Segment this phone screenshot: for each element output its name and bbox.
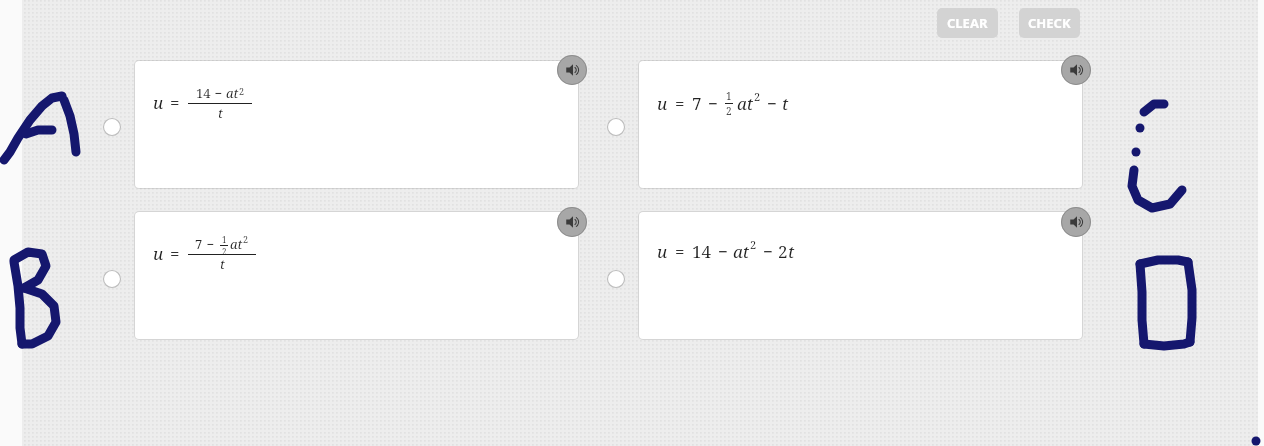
staticText: = xyxy=(170,242,180,265)
button[interactable]: CLEAR xyxy=(937,8,998,38)
staticText: 1 xyxy=(726,89,732,103)
staticText: − xyxy=(767,92,777,115)
button[interactable]: u xyxy=(135,212,578,339)
staticText: CLEAR xyxy=(947,14,988,32)
staticText: − xyxy=(211,84,226,102)
staticText: u xyxy=(153,91,164,114)
button[interactable]: Play audio A xyxy=(557,55,587,85)
staticText: 2 xyxy=(750,237,757,252)
button[interactable]: u xyxy=(639,212,1082,339)
staticText: 14 xyxy=(196,84,211,102)
staticText: 1 xyxy=(222,234,227,245)
button[interactable]: Select option C xyxy=(603,114,629,140)
staticText: CHECK xyxy=(1028,14,1071,32)
button[interactable]: Play audio B xyxy=(557,207,587,237)
staticText: 2 xyxy=(754,89,761,104)
button[interactable]: Select option D xyxy=(603,266,629,292)
button[interactable]: u xyxy=(639,61,1082,188)
staticText: − xyxy=(763,240,773,263)
button[interactable]: Select option B xyxy=(99,266,125,292)
staticText: t xyxy=(218,104,223,122)
staticText: t xyxy=(782,92,789,115)
staticText: = xyxy=(675,92,685,115)
staticText: 2 xyxy=(778,240,788,263)
staticText: 2 xyxy=(222,246,227,254)
button[interactable]: CHECK xyxy=(1019,8,1080,38)
staticText: at xyxy=(230,235,243,253)
staticText: u xyxy=(657,92,668,115)
staticText: 7 xyxy=(692,92,702,115)
staticText: − xyxy=(203,235,218,253)
button[interactable]: u xyxy=(135,61,578,188)
staticText: = xyxy=(675,240,685,263)
staticText: 7 xyxy=(195,235,203,253)
button[interactable]: Select option A xyxy=(99,114,125,140)
staticText: 2 xyxy=(239,85,245,97)
staticText: 14 xyxy=(692,240,712,263)
staticText: u xyxy=(657,240,668,263)
staticText: at xyxy=(226,84,239,102)
staticText: = xyxy=(170,91,180,114)
staticText: − xyxy=(708,92,718,115)
staticText: at xyxy=(733,240,750,263)
staticText: t xyxy=(220,255,225,273)
staticText: t xyxy=(788,240,795,263)
staticText: − xyxy=(718,240,728,263)
staticText: 2 xyxy=(726,104,732,118)
staticText: u xyxy=(153,242,164,265)
staticText: 2 xyxy=(243,233,249,245)
staticText: at xyxy=(737,92,754,115)
button[interactable]: Play audio D xyxy=(1061,207,1091,237)
button[interactable]: Play audio C xyxy=(1061,55,1091,85)
